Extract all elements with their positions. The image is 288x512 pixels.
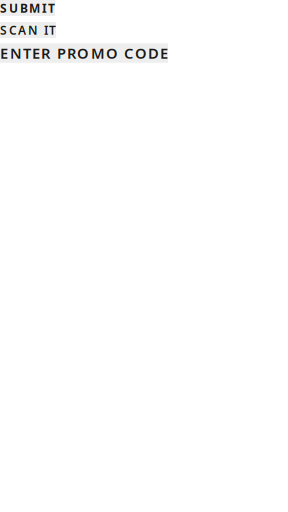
staticText: E N T E R P R O M O C O D E bbox=[0, 43, 168, 63]
staticText: S C A N I T bbox=[0, 22, 56, 38]
staticText: S U B M I T bbox=[0, 0, 55, 16]
